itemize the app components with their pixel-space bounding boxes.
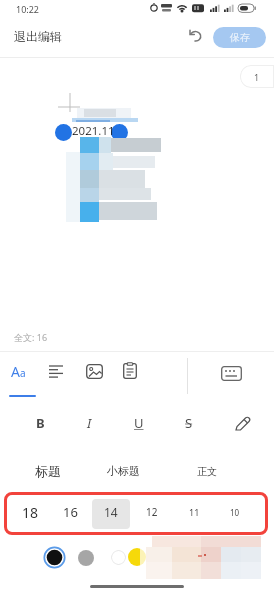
staticText: I	[87, 414, 92, 432]
staticText: 10:22	[16, 3, 40, 15]
staticText: 正文	[197, 465, 217, 478]
button[interactable]: B	[26, 408, 54, 438]
button[interactable]	[86, 364, 103, 379]
staticText: 11	[189, 506, 200, 518]
button[interactable]	[111, 550, 126, 565]
button[interactable]	[188, 29, 203, 43]
button[interactable]: 11	[176, 496, 212, 528]
button[interactable]	[221, 366, 242, 381]
staticText: 小标题	[107, 464, 140, 478]
staticText: U	[134, 414, 144, 432]
button[interactable]: 小标题	[97, 458, 149, 484]
button[interactable]	[123, 362, 137, 379]
button[interactable]: 保存	[213, 27, 266, 48]
button[interactable]: S	[175, 408, 203, 438]
button[interactable]: 12	[134, 496, 170, 528]
staticText: 1	[254, 71, 260, 83]
button[interactable]: 退出编辑	[14, 29, 62, 44]
staticText: 12	[146, 505, 158, 519]
staticText: 18	[22, 503, 39, 522]
button[interactable]: 16	[52, 496, 88, 528]
button[interactable]: 1	[240, 65, 274, 88]
staticText: S	[185, 414, 193, 432]
staticText: 2021.11	[72, 123, 115, 139]
button[interactable]: U	[125, 408, 153, 438]
staticText: 全文: 16	[14, 331, 48, 343]
staticText: 14	[104, 504, 118, 520]
button[interactable]	[49, 365, 64, 378]
button[interactable]	[43, 546, 66, 569]
staticText: 10	[230, 507, 240, 518]
staticText: 16	[63, 503, 78, 521]
button[interactable]: 正文	[187, 458, 227, 484]
button[interactable]	[128, 548, 146, 566]
staticText: Aa	[11, 362, 26, 381]
button[interactable]	[55, 124, 72, 141]
button[interactable]: 标题	[25, 458, 71, 484]
staticText: 保存	[230, 31, 250, 44]
button[interactable]: 18	[12, 496, 48, 528]
button[interactable]: Aa	[8, 356, 38, 398]
staticText: 标题	[35, 463, 61, 479]
button[interactable]	[235, 416, 250, 431]
button[interactable]: 10	[217, 496, 253, 528]
button[interactable]: I	[75, 408, 103, 438]
button[interactable]	[111, 124, 128, 141]
staticText: B	[36, 414, 45, 432]
button[interactable]	[78, 550, 94, 566]
button[interactable]: 14	[92, 496, 130, 528]
